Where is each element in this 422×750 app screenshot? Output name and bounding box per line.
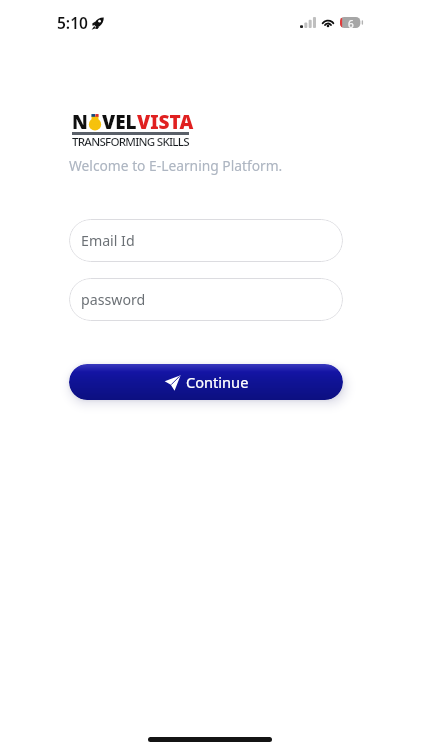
staticText: 5:10	[57, 12, 88, 33]
staticText: 6	[348, 17, 354, 28]
staticText: Welcome to E-Learning Platform.	[69, 156, 283, 175]
other: Send	[164, 374, 181, 391]
staticText: TRANSFORMING SKILLS	[72, 134, 189, 150]
other: Battery 6 percent	[340, 17, 363, 28]
staticText: N	[72, 109, 88, 135]
other: Rocket	[91, 17, 104, 30]
staticText: VISTA	[137, 109, 194, 135]
other: Wi-Fi	[321, 16, 335, 29]
staticText: Email Id	[81, 231, 135, 250]
staticText: VEL	[102, 109, 137, 135]
button[interactable]: password	[69, 278, 343, 321]
staticText: Continue	[186, 372, 249, 392]
button[interactable]: Send	[69, 364, 343, 400]
staticText: password	[81, 290, 146, 309]
button[interactable]: Email Id	[69, 219, 343, 262]
